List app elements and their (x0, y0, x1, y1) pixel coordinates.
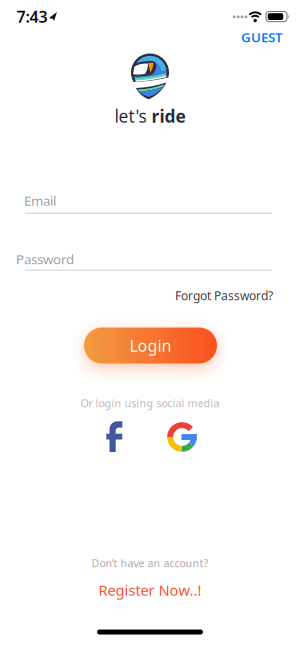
staticText: Register Now..! (98, 580, 201, 600)
staticText: let's ride (114, 104, 185, 127)
staticText: Login (129, 335, 171, 356)
button[interactable]: Password (0, 240, 300, 280)
staticText: 7:43 (16, 6, 47, 27)
button[interactable]: Register Now..! (98, 580, 201, 600)
staticText: Password (16, 250, 74, 268)
staticText: Or login using social media (80, 396, 219, 410)
staticText: GUEST (241, 28, 283, 46)
button[interactable]: Login with Facebook (94, 416, 134, 456)
button[interactable]: Email (0, 183, 300, 223)
button[interactable]: Forgot Password? (27, 287, 273, 303)
button[interactable]: Login (84, 327, 217, 363)
button[interactable]: Login with Google (162, 417, 202, 457)
button[interactable]: GUEST (17, 28, 283, 46)
staticText: Don’t have an account? (91, 556, 208, 570)
staticText: Forgot Password? (175, 287, 273, 303)
staticText: Email (24, 192, 56, 209)
